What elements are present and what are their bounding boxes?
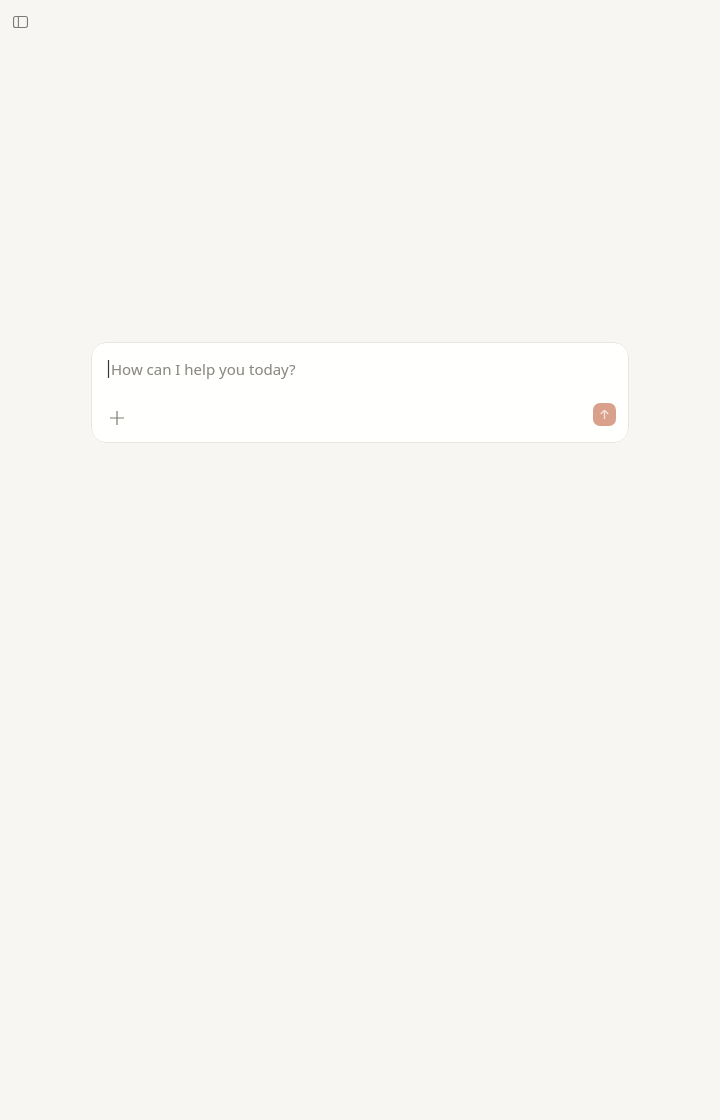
button[interactable]: Send message [593, 403, 616, 426]
button[interactable]: Toggle sidebar [6, 8, 34, 36]
button[interactable]: Add attachment [103, 404, 131, 432]
staticText: How can I help you today? [111, 359, 296, 379]
button[interactable]: How can I help you today? [91, 342, 629, 443]
